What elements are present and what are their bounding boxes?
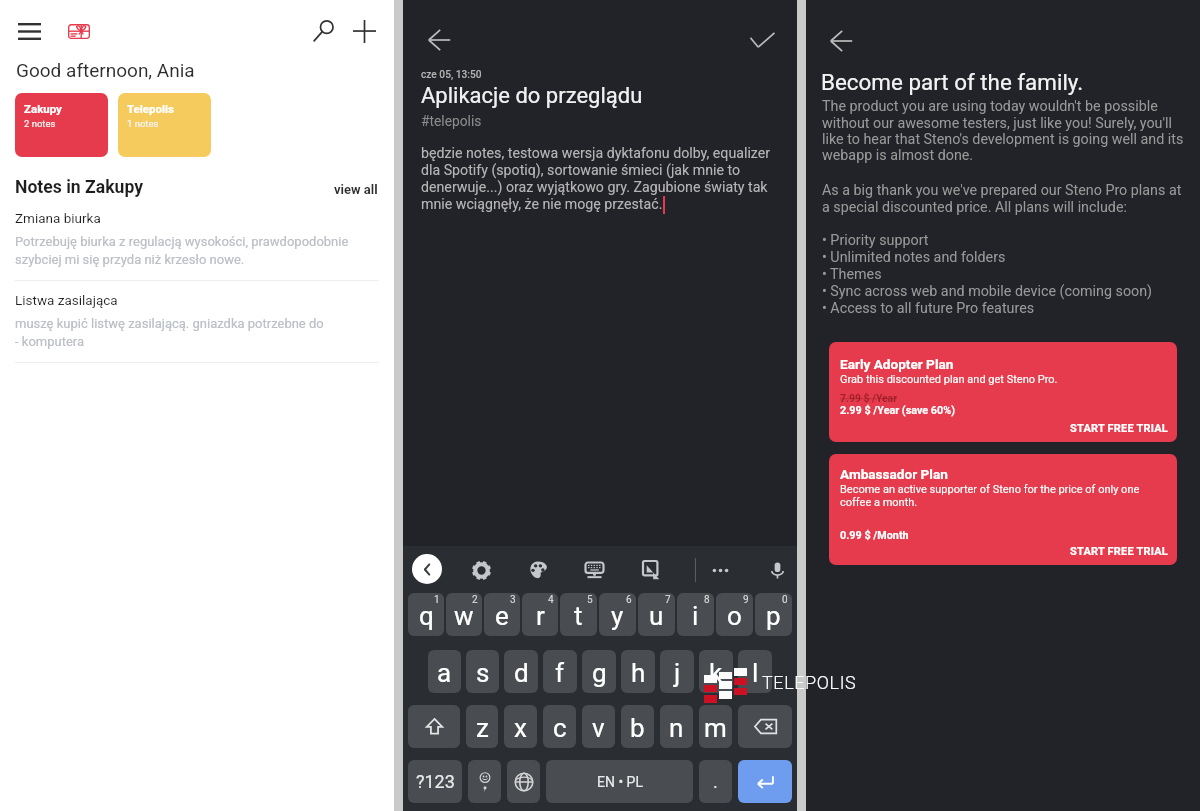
button[interactable]: z bbox=[466, 705, 498, 748]
button[interactable]: o bbox=[716, 593, 753, 636]
staticText: Good afternoon, Ania bbox=[16, 59, 195, 81]
staticText: z bbox=[476, 713, 489, 743]
button[interactable]: EN • PL bbox=[546, 760, 693, 803]
button[interactable]: r bbox=[522, 593, 558, 636]
button[interactable]: c bbox=[543, 705, 576, 748]
button[interactable]: n bbox=[660, 705, 693, 748]
staticText: As a big thank you we've prepared our St… bbox=[822, 182, 1188, 216]
button[interactable]: Keyboard layout bbox=[580, 556, 608, 584]
staticText: • Priority support • Unlimited notes and… bbox=[822, 232, 1194, 317]
button[interactable]: Keyboard settings bbox=[467, 556, 495, 584]
button[interactable]: Hide keyboard bbox=[412, 554, 442, 584]
staticText: 0.99 $ /Month bbox=[840, 529, 909, 542]
button[interactable]: h bbox=[621, 650, 655, 693]
staticText: y bbox=[611, 601, 624, 631]
button[interactable]: Resize keyboard bbox=[637, 556, 665, 584]
staticText: i bbox=[692, 601, 699, 631]
button[interactable]: Telepolis bbox=[118, 93, 211, 157]
button[interactable]: Theme bbox=[524, 556, 552, 584]
button[interactable]: Early Adopter Plan bbox=[829, 342, 1177, 442]
button[interactable]: k bbox=[699, 650, 733, 693]
button[interactable]: b bbox=[621, 705, 654, 748]
button[interactable]: START FREE TRIAL bbox=[1068, 543, 1171, 560]
staticText: s bbox=[476, 658, 490, 688]
button[interactable]: Add note bbox=[348, 15, 380, 47]
staticText: b bbox=[630, 713, 645, 743]
staticText: q bbox=[419, 601, 434, 631]
button[interactable]: i bbox=[677, 593, 714, 636]
staticText: m bbox=[704, 713, 727, 743]
staticText: n bbox=[669, 713, 684, 743]
button[interactable]: Menu bbox=[13, 15, 45, 47]
button[interactable]: More options bbox=[706, 556, 734, 584]
staticText: 7 bbox=[665, 594, 671, 606]
button[interactable]: v bbox=[582, 705, 615, 748]
button[interactable]: p bbox=[755, 593, 792, 636]
button[interactable]: Enter bbox=[738, 760, 792, 803]
staticText: EN • PL bbox=[597, 774, 643, 790]
button[interactable]: s bbox=[466, 650, 499, 693]
staticText: d bbox=[514, 658, 529, 688]
button[interactable]: Back bbox=[825, 25, 857, 57]
staticText: o bbox=[727, 601, 742, 631]
button[interactable]: Shift bbox=[408, 705, 460, 748]
staticText: k bbox=[709, 658, 723, 688]
button[interactable]: x bbox=[504, 705, 537, 748]
staticText: 2.99 $ /Year (save 60%) bbox=[840, 404, 955, 417]
button[interactable]: Voice typing bbox=[763, 556, 791, 584]
button[interactable]: w bbox=[446, 593, 482, 636]
staticText: 1 notes bbox=[127, 118, 159, 129]
button[interactable]: u bbox=[638, 593, 675, 636]
button[interactable]: . bbox=[699, 760, 732, 803]
staticText: Grab this discounted plan and get Steno … bbox=[840, 373, 1058, 386]
staticText: START FREE TRIAL bbox=[1070, 545, 1169, 558]
button[interactable]: view all bbox=[320, 178, 378, 200]
staticText: ?123 bbox=[416, 771, 455, 792]
button[interactable]: y bbox=[599, 593, 636, 636]
staticText: 9 bbox=[743, 594, 749, 606]
staticText: The product you are using today wouldn't… bbox=[822, 98, 1188, 163]
button[interactable]: Listwa zasilająca bbox=[0, 288, 394, 362]
button[interactable]: Backspace bbox=[738, 705, 792, 748]
staticText: w bbox=[454, 601, 474, 631]
staticText: e bbox=[495, 601, 509, 631]
button[interactable]: ?123 bbox=[408, 760, 462, 803]
button[interactable]: Zakupy bbox=[15, 93, 108, 157]
staticText: Early Adopter Plan bbox=[840, 356, 954, 372]
button[interactable]: START FREE TRIAL bbox=[1068, 420, 1171, 437]
button[interactable]: Save note bbox=[747, 25, 777, 55]
button[interactable]: Change language bbox=[507, 760, 540, 803]
staticText: x bbox=[514, 713, 527, 743]
button[interactable]: a bbox=[428, 650, 461, 693]
button[interactable]: q bbox=[408, 593, 444, 636]
button[interactable]: f bbox=[543, 650, 577, 693]
button[interactable]: Ambassador Plan bbox=[829, 454, 1177, 565]
staticText: l bbox=[752, 658, 759, 688]
staticText: Telepolis bbox=[127, 102, 175, 115]
staticText: g bbox=[592, 658, 607, 688]
staticText: TELEPOLIS bbox=[762, 672, 857, 693]
button[interactable]: Zmiana biurka bbox=[0, 206, 394, 280]
staticText: Zmiana biurka bbox=[15, 210, 101, 226]
button[interactable]: m bbox=[699, 705, 732, 748]
button[interactable]: e bbox=[484, 593, 520, 636]
staticText: h bbox=[631, 658, 646, 688]
staticText: t bbox=[574, 601, 583, 631]
button[interactable]: l bbox=[738, 650, 772, 693]
button[interactable]: Emoji bbox=[468, 760, 501, 803]
button[interactable]: Search bbox=[308, 15, 340, 47]
button[interactable]: Gifts bbox=[62, 19, 95, 43]
staticText: 1 bbox=[434, 594, 440, 606]
button[interactable]: t bbox=[560, 593, 597, 636]
staticText: . bbox=[713, 771, 718, 792]
staticText: Listwa zasilająca bbox=[15, 292, 118, 308]
staticText: r bbox=[536, 601, 545, 631]
button[interactable]: j bbox=[660, 650, 694, 693]
button[interactable]: d bbox=[504, 650, 538, 693]
staticText: muszę kupić listwę zasilającą. gniazdka … bbox=[15, 316, 324, 349]
button[interactable]: g bbox=[582, 650, 616, 693]
button[interactable]: Back bbox=[423, 24, 455, 56]
staticText: Ambassador Plan bbox=[840, 466, 948, 482]
staticText: 4 bbox=[548, 594, 554, 606]
staticText: Potrzebuję biurka z regulacją wysokości,… bbox=[15, 234, 349, 267]
